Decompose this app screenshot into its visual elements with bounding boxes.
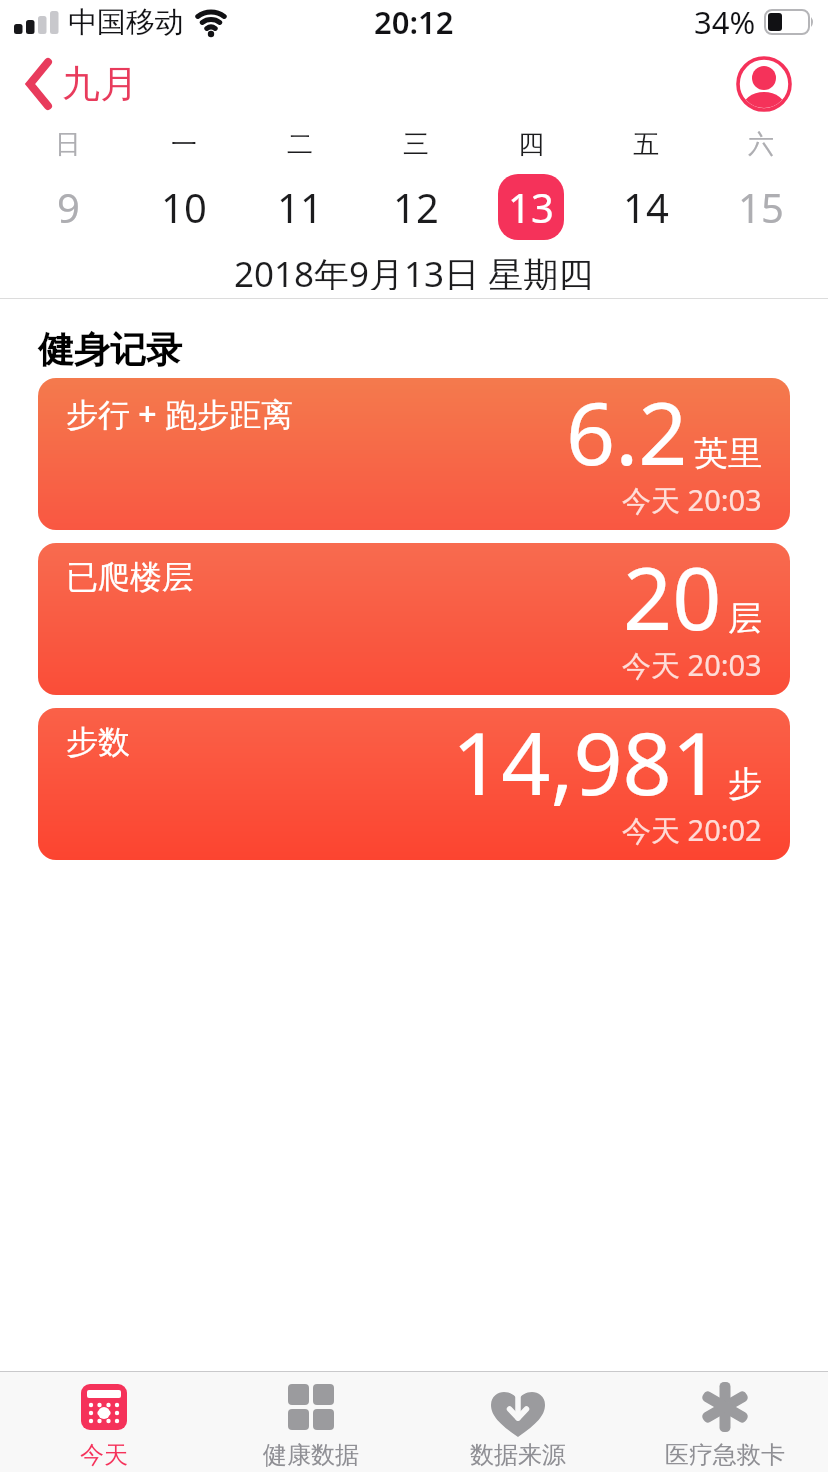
- staticText: 9: [57, 180, 80, 234]
- staticText: 医疗急救卡: [665, 1440, 785, 1470]
- staticText: 一: [171, 128, 197, 161]
- button[interactable]: 步行 + 跑步距离: [38, 378, 790, 530]
- staticText: 日: [55, 128, 81, 161]
- staticText: 已爬楼层: [66, 557, 194, 597]
- staticText: 中国移动: [68, 4, 184, 41]
- staticText: 15: [738, 180, 784, 234]
- button[interactable]: 九月: [26, 60, 138, 108]
- button[interactable]: 已爬楼层: [38, 543, 790, 695]
- staticText: 今天 20:03: [622, 480, 762, 520]
- staticText: 步行 + 跑步距离: [66, 392, 293, 436]
- staticText: 14: [623, 180, 669, 234]
- staticText: 英里: [694, 432, 762, 475]
- staticText: 今天 20:03: [622, 645, 762, 685]
- button[interactable]: [736, 56, 792, 112]
- staticText: 20:12: [374, 1, 454, 43]
- button[interactable]: 医疗急救卡: [621, 1372, 828, 1472]
- staticText: 13: [508, 180, 554, 234]
- staticText: 数据来源: [470, 1440, 566, 1470]
- staticText: 今天 20:02: [622, 810, 762, 850]
- button[interactable]: 健康数据: [207, 1372, 414, 1472]
- staticText: 层: [728, 597, 762, 640]
- staticText: 14,981: [452, 708, 722, 820]
- staticText: 今天: [80, 1440, 128, 1470]
- button[interactable]: 13: [498, 174, 564, 240]
- staticText: 2018年9月13日 星期四: [234, 250, 594, 290]
- staticText: 四: [518, 128, 544, 161]
- button[interactable]: 步数: [38, 708, 790, 860]
- staticText: 六: [748, 128, 774, 161]
- staticText: 五: [633, 128, 659, 161]
- button[interactable]: 今天: [0, 1372, 207, 1472]
- staticText: 步: [728, 762, 762, 805]
- staticText: 九月: [62, 60, 138, 108]
- button[interactable]: 数据来源: [414, 1372, 621, 1472]
- staticText: 20: [623, 543, 722, 655]
- staticText: 健康数据: [263, 1440, 359, 1470]
- staticText: 34%: [694, 1, 756, 43]
- staticText: 健身记录: [38, 327, 182, 372]
- staticText: 10: [161, 180, 207, 234]
- staticText: 12: [393, 180, 439, 234]
- staticText: 三: [403, 128, 429, 161]
- staticText: 步数: [66, 722, 130, 762]
- staticText: 二: [287, 128, 313, 161]
- staticText: 11: [277, 180, 323, 234]
- staticText: 6.2: [566, 378, 688, 490]
